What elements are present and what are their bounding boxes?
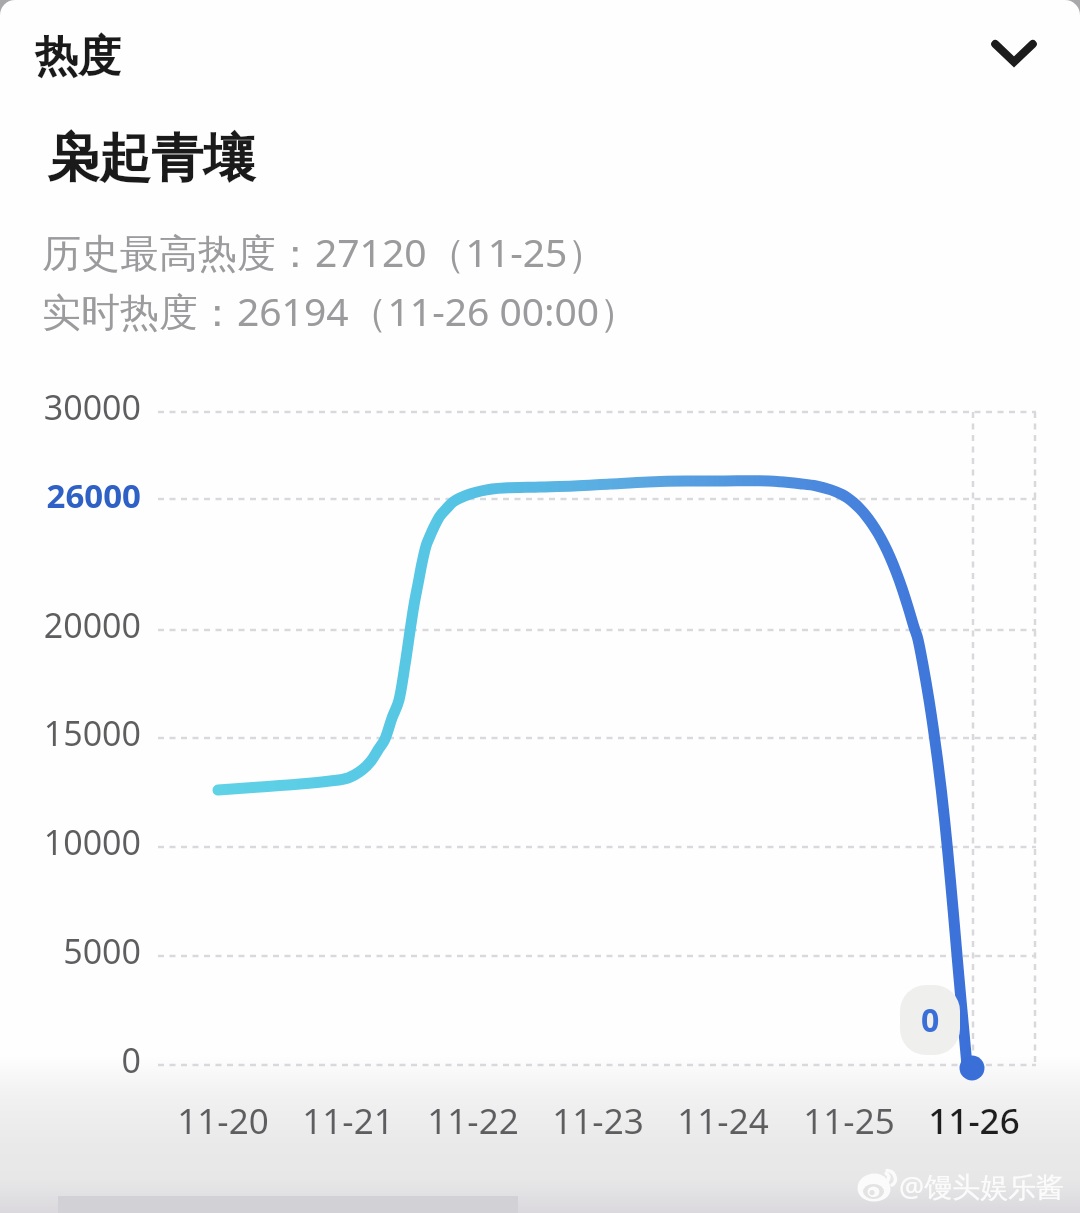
staticText: 0 bbox=[921, 998, 940, 1042]
staticText: 11-23 bbox=[518, 1097, 678, 1145]
staticText: 30000 bbox=[0, 384, 141, 430]
button[interactable]: Collapse bbox=[960, 17, 1068, 97]
staticText: 11-20 bbox=[143, 1097, 303, 1145]
staticText: 历史最高热度：27120（11-25） bbox=[42, 225, 607, 278]
staticText: 11-24 bbox=[643, 1097, 803, 1145]
staticText: 26000 bbox=[0, 473, 141, 518]
staticText: @馒头娱乐酱 bbox=[899, 1167, 1065, 1205]
staticText: 11-21 bbox=[268, 1097, 428, 1145]
staticText: 0 bbox=[0, 1037, 141, 1083]
staticText: 20000 bbox=[0, 602, 141, 648]
staticText: 5000 bbox=[0, 928, 141, 974]
staticText: 实时热度：26194（11-26 00:00） bbox=[42, 284, 639, 337]
staticText: 11-22 bbox=[393, 1097, 553, 1145]
staticText: 11-25 bbox=[769, 1097, 929, 1145]
staticText: 10000 bbox=[0, 819, 141, 865]
staticText: 15000 bbox=[0, 710, 141, 756]
staticText: 热度 bbox=[35, 30, 121, 84]
staticText: 11-26 bbox=[894, 1097, 1054, 1145]
staticText: 枭起青壤 bbox=[47, 126, 255, 192]
